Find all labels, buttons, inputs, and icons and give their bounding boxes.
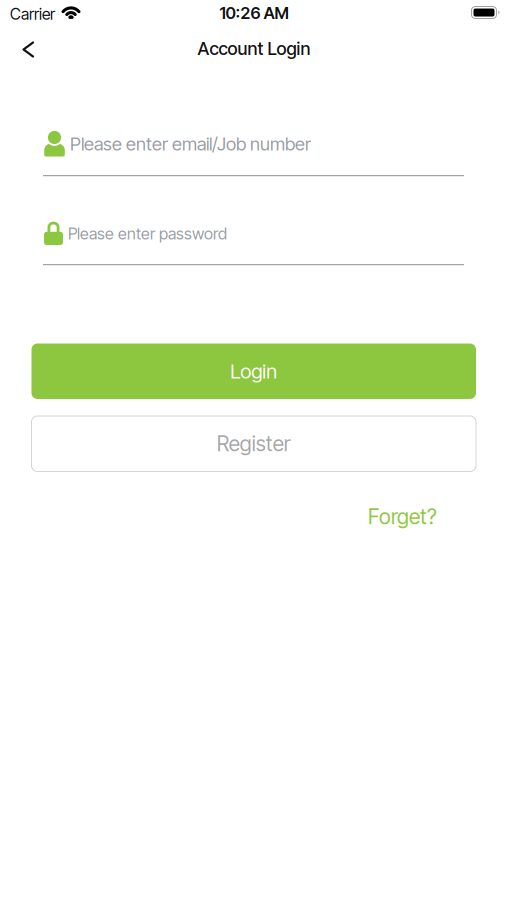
staticText: Register: [217, 431, 291, 456]
button[interactable]: Forget?: [368, 504, 437, 529]
button[interactable]: Register: [31, 416, 476, 471]
staticText: Account Login: [197, 38, 310, 59]
staticText: 10:26 AM: [219, 3, 288, 23]
button[interactable]: Login: [31, 343, 476, 399]
button[interactable]: Email or job number: [43, 122, 464, 166]
staticText: Please enter password: [68, 224, 227, 243]
staticText: Please enter email/Job number: [70, 133, 311, 155]
staticText: Carrier: [10, 4, 55, 24]
staticText: Login: [230, 359, 277, 383]
button[interactable]: Password: [43, 211, 464, 255]
button[interactable]: Back: [6, 27, 50, 71]
staticText: Forget?: [368, 504, 437, 529]
